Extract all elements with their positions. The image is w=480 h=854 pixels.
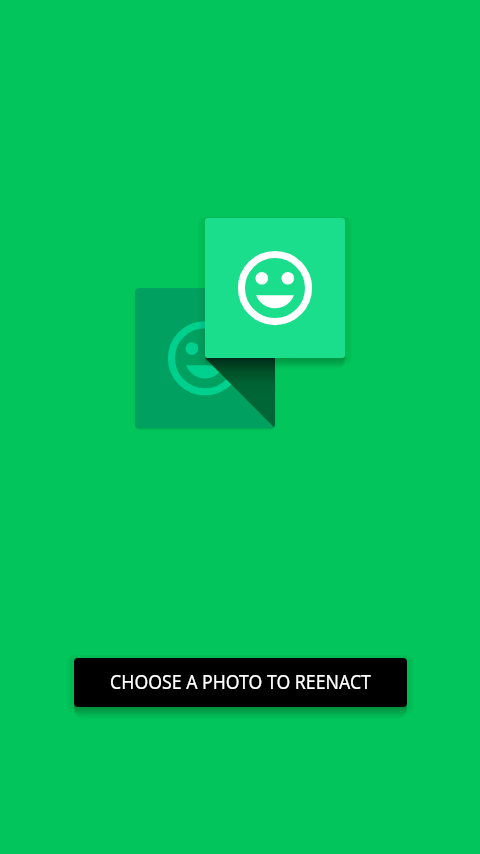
staticText: CHOOSE A PHOTO TO REENACT bbox=[110, 667, 371, 695]
button[interactable]: CHOOSE A PHOTO TO REENACT bbox=[74, 658, 407, 707]
